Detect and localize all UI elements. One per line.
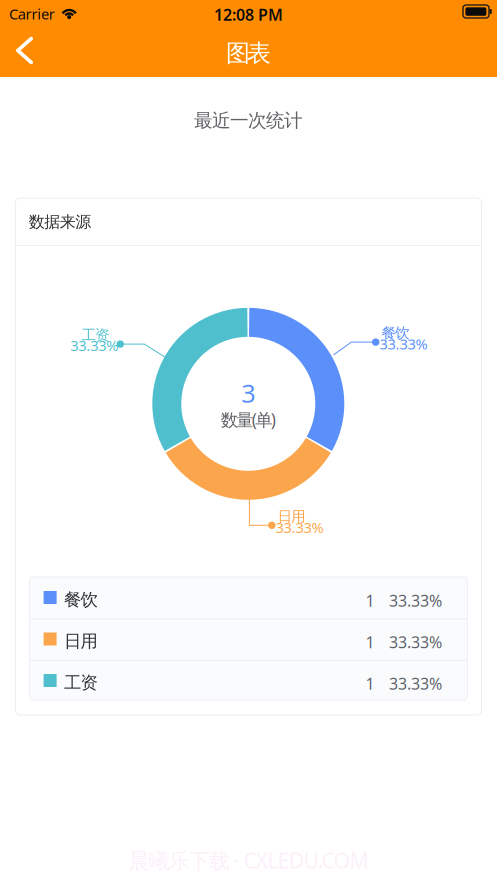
staticText: 33.33% bbox=[389, 673, 442, 694]
staticText: 12:08 PM bbox=[214, 4, 283, 25]
staticText: 最近一次统计 bbox=[194, 109, 303, 132]
staticText: 33.33% bbox=[379, 334, 427, 353]
staticText: 1 bbox=[365, 590, 374, 611]
staticText: 图表 bbox=[226, 38, 271, 68]
staticText: 餐饮 bbox=[381, 324, 410, 342]
staticText: Carrier bbox=[9, 4, 55, 23]
staticText: 日用 bbox=[277, 507, 306, 525]
staticText: 数据来源 bbox=[29, 212, 91, 232]
staticText: 数量(单) bbox=[221, 408, 276, 431]
button[interactable]: Back bbox=[0, 26, 52, 77]
staticText: 日用 bbox=[64, 630, 98, 652]
staticText: 33.33% bbox=[389, 631, 442, 653]
staticText: 工资 bbox=[64, 672, 98, 693]
staticText: 33.33% bbox=[389, 590, 442, 611]
staticText: 33.33% bbox=[275, 517, 323, 537]
staticText: 1 bbox=[365, 673, 374, 694]
staticText: 33.33% bbox=[70, 335, 118, 355]
staticText: 3 bbox=[241, 376, 255, 410]
staticText: 工资 bbox=[81, 326, 110, 344]
staticText: 餐饮 bbox=[64, 589, 98, 610]
staticText: 1 bbox=[365, 631, 374, 653]
staticText: 晨曦乐下载 · CXLEDU.COM bbox=[128, 846, 368, 874]
